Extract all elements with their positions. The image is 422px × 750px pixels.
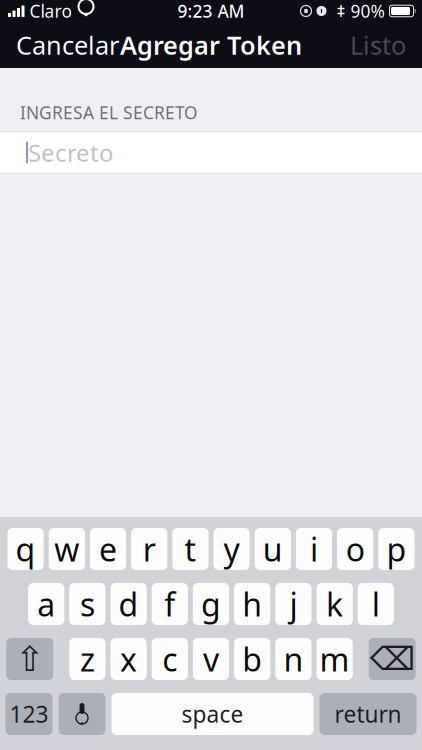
button[interactable]: u (255, 528, 291, 570)
staticText: g (201, 583, 221, 625)
staticText: b (242, 638, 262, 680)
staticText: x (120, 638, 137, 680)
staticText: ⇧ (15, 639, 44, 679)
staticText: s (80, 583, 95, 625)
staticText: z (80, 638, 95, 680)
button[interactable]: o (337, 528, 373, 570)
staticText: w (54, 528, 79, 570)
staticText: j (289, 583, 297, 625)
staticText: Secreto (28, 137, 114, 168)
button[interactable]: j (275, 583, 311, 625)
button[interactable]: 123 (5, 693, 52, 735)
button[interactable]: return (319, 693, 416, 735)
button[interactable]: t (172, 528, 208, 570)
button[interactable]: e (90, 528, 126, 570)
button[interactable]: q (7, 528, 44, 570)
button[interactable]: Dictation (58, 693, 105, 735)
staticText: c (162, 638, 177, 680)
button[interactable]: m (316, 638, 353, 680)
button[interactable]: x (110, 638, 147, 680)
staticText: Listo (350, 28, 406, 62)
staticText: r (143, 528, 156, 570)
button[interactable]: Cancelar (0, 18, 135, 72)
button[interactable]: a (28, 583, 64, 625)
staticText: u (263, 528, 283, 570)
button[interactable]: z (69, 638, 105, 680)
staticText: m (320, 638, 350, 680)
button[interactable]: b (234, 638, 270, 680)
staticText: d (119, 583, 139, 625)
staticText: a (37, 583, 55, 625)
staticText: n (283, 638, 303, 680)
button[interactable]: r (131, 528, 167, 570)
button[interactable]: n (275, 638, 311, 680)
staticText: h (242, 583, 262, 625)
button[interactable]: w (49, 528, 85, 570)
button[interactable]: Secreto (0, 131, 422, 174)
button[interactable]: Delete (369, 638, 416, 680)
staticText: v (203, 638, 219, 680)
button[interactable]: f (152, 583, 188, 625)
staticText: ⌫ (370, 641, 415, 677)
button[interactable]: i (296, 528, 332, 570)
staticText: INGRESA EL SECRETO (20, 101, 198, 124)
staticText: k (326, 583, 343, 625)
staticText: return (334, 699, 401, 729)
button[interactable]: y (213, 528, 250, 570)
button[interactable]: space (111, 693, 313, 735)
staticText: y (224, 528, 240, 570)
button[interactable]: l (358, 583, 394, 625)
staticText: 123 (9, 699, 48, 729)
staticText: i (310, 528, 318, 570)
button[interactable]: k (316, 583, 353, 625)
staticText: Cancelar (16, 28, 119, 62)
staticText: f (164, 583, 175, 625)
staticText: l (372, 583, 380, 625)
button[interactable]: v (193, 638, 229, 680)
button[interactable]: Shift (6, 638, 53, 680)
staticText: 90% (350, 0, 384, 22)
button[interactable]: g (193, 583, 229, 625)
button[interactable]: p (378, 528, 414, 570)
staticText: e (99, 528, 117, 570)
button[interactable]: Listo (334, 18, 422, 72)
staticText: Agregar Token (120, 28, 302, 62)
staticText: Claro (29, 0, 71, 22)
button[interactable]: c (152, 638, 188, 680)
button[interactable]: s (69, 583, 105, 625)
staticText: o (346, 528, 365, 570)
button[interactable]: d (110, 583, 147, 625)
staticText: space (181, 699, 243, 729)
staticText: p (386, 528, 406, 570)
staticText: q (16, 528, 36, 570)
staticText: t (184, 528, 196, 570)
staticText: 9:23 AM (177, 0, 244, 22)
button[interactable]: h (234, 583, 270, 625)
